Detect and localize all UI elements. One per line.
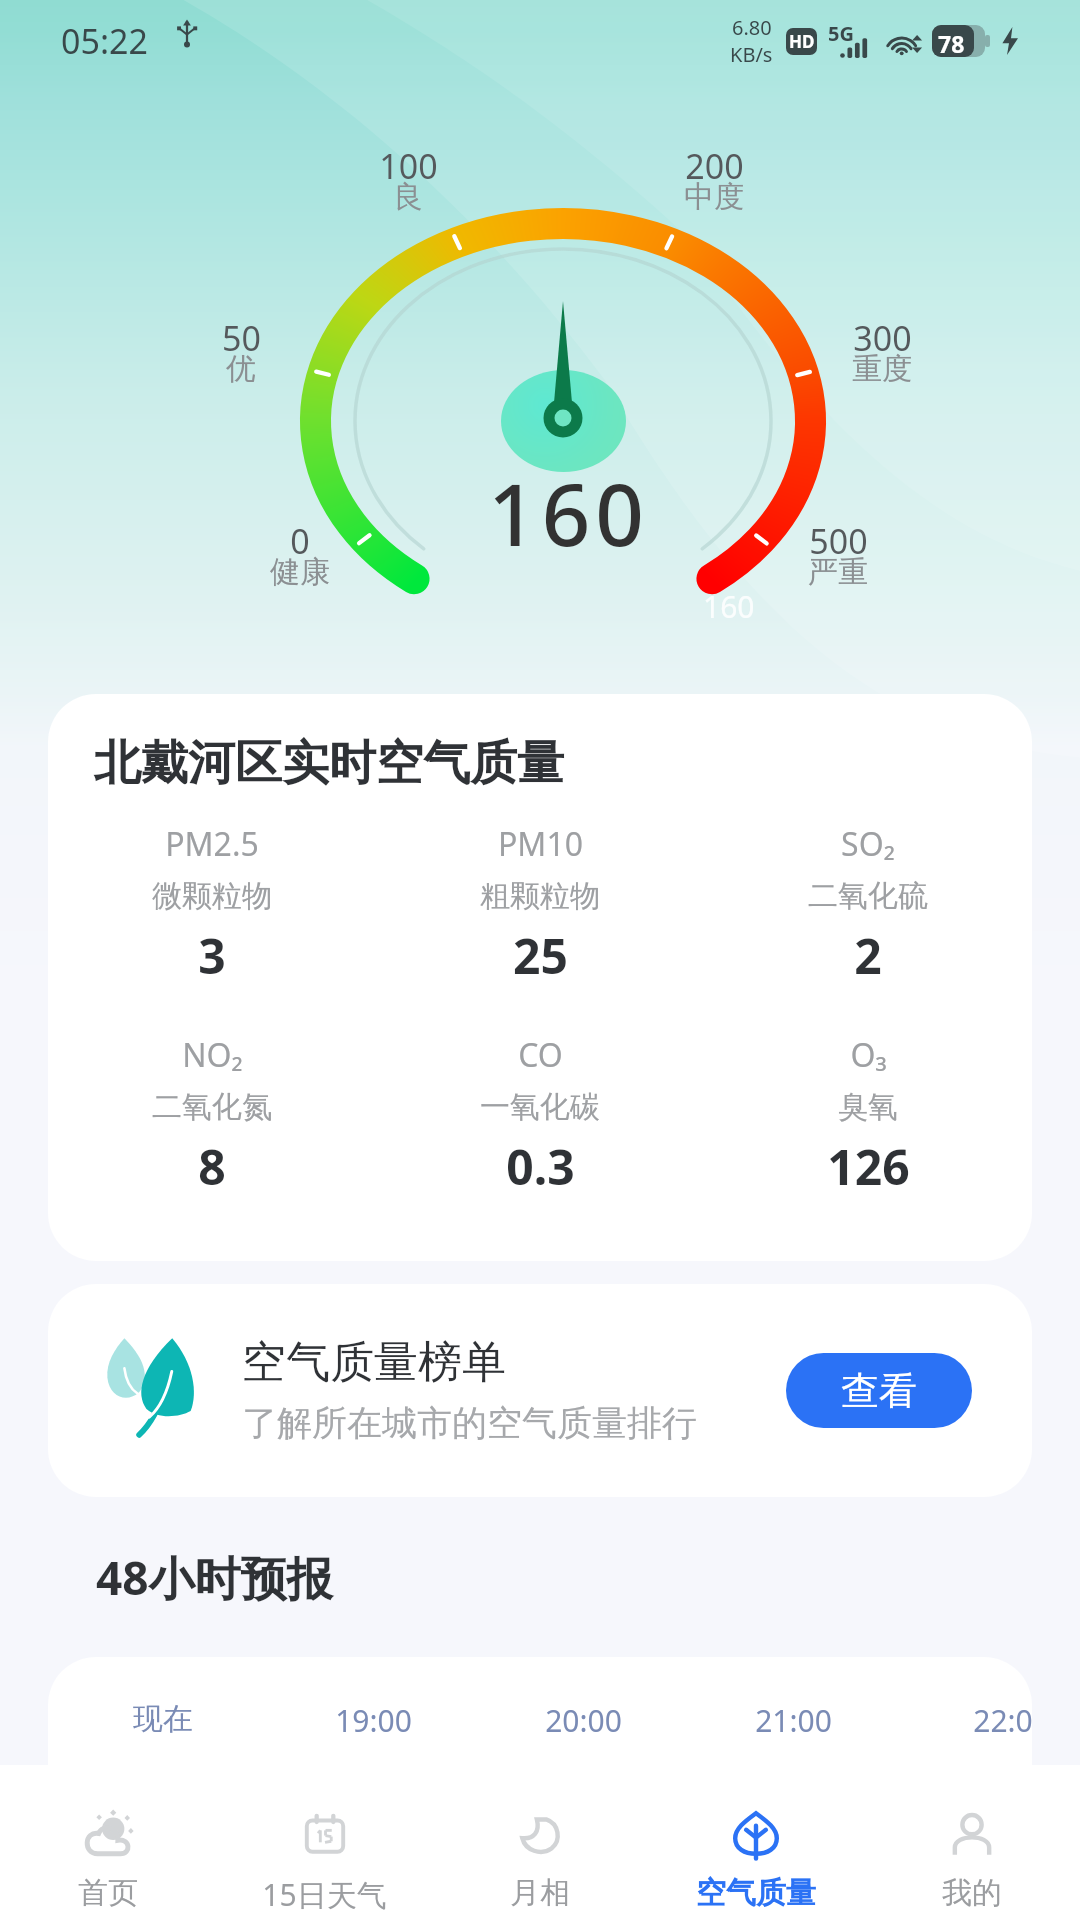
staticText: 19:00	[335, 1700, 412, 1741]
staticText: 300	[853, 315, 912, 361]
staticText: 78	[938, 28, 965, 59]
staticText: 48小时预报	[96, 1546, 333, 1609]
staticText: 首页	[78, 1874, 138, 1912]
staticText: 二氧化氮	[152, 1088, 272, 1126]
button[interactable]: 空气质量	[648, 1765, 864, 1920]
staticText: 8	[198, 1134, 226, 1199]
staticText: HD	[789, 30, 815, 53]
staticText: O₃	[850, 1033, 887, 1077]
staticText: 0	[290, 518, 310, 564]
button[interactable]: 首页	[0, 1765, 216, 1920]
staticText: 二氧化硫	[808, 877, 928, 915]
staticText: 20:00	[545, 1700, 622, 1741]
staticText: 126	[827, 1134, 910, 1199]
button[interactable]: 月相	[432, 1765, 648, 1920]
staticText: 500	[809, 518, 868, 564]
staticText: PM10	[498, 822, 583, 866]
staticText: PM2.5	[165, 822, 259, 866]
staticText: CO	[518, 1033, 563, 1077]
staticText: 100	[379, 143, 438, 189]
staticText: 一氧化碳	[480, 1088, 600, 1126]
staticText: 15日天气	[262, 1874, 387, 1915]
staticText: 臭氧	[838, 1088, 898, 1126]
staticText: 严重	[808, 553, 868, 591]
staticText: 空气质量榜单	[242, 1335, 506, 1390]
staticText: 05:22	[61, 18, 148, 64]
button[interactable]: 空气质量榜单	[48, 1284, 1032, 1497]
staticText: 粗颗粒物	[480, 877, 600, 915]
staticText: 160	[488, 455, 649, 571]
staticText: 25	[513, 923, 568, 988]
staticText: 2	[854, 923, 882, 988]
staticText: 月相	[510, 1874, 570, 1912]
staticText: 微颗粒物	[152, 877, 272, 915]
staticText: 6.80	[732, 14, 772, 41]
staticText: 查看	[841, 1367, 917, 1415]
staticText: 3	[198, 923, 226, 988]
staticText: 健康	[270, 553, 330, 591]
button[interactable]: 15日天气	[216, 1765, 432, 1920]
staticText: 5G	[828, 20, 854, 47]
staticText: 空气质量	[696, 1874, 816, 1912]
staticText: KB/s	[730, 41, 773, 68]
button[interactable]: 我的	[864, 1765, 1080, 1920]
staticText: 160	[703, 586, 755, 627]
staticText: 了解所在城市的空气质量排行	[242, 1401, 697, 1445]
staticText: 我的	[942, 1874, 1002, 1912]
staticText: 良	[393, 178, 423, 216]
staticText: 21:00	[755, 1700, 832, 1741]
staticText: 现在	[133, 1700, 193, 1738]
staticText: 北戴河区实时空气质量	[94, 734, 564, 793]
staticText: 中度	[684, 178, 744, 216]
staticText: 0.3	[506, 1134, 575, 1199]
staticText: SO₂	[841, 822, 895, 866]
staticText: 优	[226, 350, 256, 388]
staticText: 50	[222, 315, 261, 361]
staticText: 重度	[852, 350, 912, 388]
staticText: NO₂	[182, 1033, 243, 1077]
staticText: 22:0	[973, 1700, 1032, 1741]
staticText: 200	[685, 143, 744, 189]
button[interactable]: 查看	[786, 1353, 972, 1428]
